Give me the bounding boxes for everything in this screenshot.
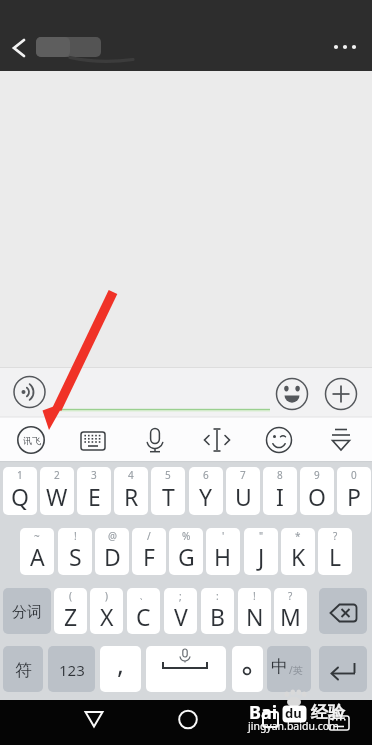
button[interactable]: ' — [206, 528, 240, 575]
button[interactable]: ? — [318, 528, 352, 575]
button[interactable]: ) — [90, 588, 123, 634]
staticText: 0 — [351, 468, 357, 482]
staticText: 3 — [91, 468, 97, 482]
button[interactable] — [146, 646, 226, 692]
button[interactable]: @ — [95, 528, 129, 575]
button[interactable] — [232, 646, 263, 692]
staticText: 中 — [271, 656, 288, 677]
staticText: % — [182, 529, 191, 543]
button[interactable]: 9 — [300, 467, 334, 515]
button[interactable] — [6, 32, 38, 64]
button[interactable]: ~ — [20, 528, 54, 575]
staticText: ) — [105, 589, 108, 603]
button[interactable]: ! — [238, 588, 271, 634]
button[interactable] — [319, 588, 367, 634]
staticText: 9 — [314, 468, 320, 482]
button[interactable] — [325, 378, 357, 410]
staticText: O — [308, 481, 326, 512]
button[interactable] — [323, 422, 359, 458]
staticText: /英 — [289, 663, 303, 677]
button[interactable]: ; — [164, 588, 197, 634]
staticText: du — [285, 704, 302, 722]
staticText: ( — [69, 589, 72, 603]
button[interactable]: 8 — [263, 467, 297, 515]
button[interactable] — [261, 422, 297, 458]
staticText: : — [216, 589, 219, 603]
staticText: W — [46, 481, 68, 512]
staticText: 符 — [15, 660, 32, 681]
staticText: D — [104, 541, 121, 572]
button[interactable] — [319, 646, 367, 692]
staticText: ~ — [34, 529, 40, 543]
staticText: Z — [64, 601, 78, 632]
staticText: B — [210, 601, 225, 632]
button[interactable] — [14, 376, 46, 408]
staticText: 5 — [165, 468, 171, 482]
staticText: M — [280, 601, 301, 632]
staticText: I — [276, 481, 284, 512]
button[interactable] — [137, 422, 173, 458]
button[interactable] — [78, 706, 110, 738]
button[interactable]: 6 — [189, 467, 223, 515]
button[interactable] — [199, 422, 235, 458]
staticText: E — [88, 481, 101, 512]
staticText: Y — [199, 481, 213, 512]
staticText: " — [259, 529, 264, 543]
button[interactable]: ? — [274, 588, 307, 634]
button[interactable]: ( — [54, 588, 87, 634]
staticText: H — [214, 541, 232, 572]
button[interactable]: 分词 — [3, 588, 51, 634]
button[interactable]: 符 — [3, 646, 43, 692]
staticText: ? — [333, 529, 338, 543]
button[interactable] — [172, 706, 204, 738]
button[interactable]: * — [281, 528, 315, 575]
staticText: 6 — [203, 468, 209, 482]
staticText: ? — [288, 589, 293, 603]
button[interactable]: 3 — [77, 467, 111, 515]
staticText: ' — [222, 529, 225, 543]
button[interactable]: 0 — [337, 467, 371, 515]
button[interactable]: % — [169, 528, 203, 575]
button[interactable] — [328, 32, 364, 64]
staticText: 讯飞 — [23, 435, 41, 446]
staticText: F — [143, 541, 155, 572]
button[interactable] — [75, 422, 111, 458]
staticText: ! — [253, 589, 256, 603]
button[interactable]: ! — [58, 528, 92, 575]
staticText: 分词 — [12, 603, 42, 622]
staticText: 2 — [54, 468, 60, 482]
staticText: 123 — [59, 660, 85, 680]
button[interactable]: 123 — [48, 646, 95, 692]
button[interactable]: 、 — [127, 588, 160, 634]
button[interactable] — [13, 422, 49, 458]
button[interactable] — [276, 378, 308, 410]
button[interactable]: : — [201, 588, 234, 634]
staticText: U — [235, 481, 252, 512]
staticText: ; — [179, 589, 182, 603]
button[interactable]: 1 — [3, 467, 37, 515]
staticText: Q — [11, 481, 29, 512]
button[interactable]: 4 — [114, 467, 148, 515]
staticText: 、 — [139, 589, 149, 602]
staticText: 1 — [17, 468, 23, 482]
button[interactable] — [254, 706, 286, 738]
staticText: 4 — [128, 468, 134, 482]
staticText: * — [295, 529, 301, 543]
staticText: A — [30, 541, 45, 572]
button[interactable]: 7 — [226, 467, 260, 515]
staticText: @ — [108, 529, 117, 543]
button[interactable] — [267, 646, 311, 692]
button[interactable]: , — [100, 646, 141, 692]
button[interactable]: " — [244, 528, 278, 575]
staticText: C — [136, 601, 151, 632]
button[interactable]: 5 — [151, 467, 185, 515]
staticText: L — [329, 541, 342, 572]
staticText: 经验 — [311, 702, 345, 723]
button[interactable]: / — [132, 528, 166, 575]
staticText: K — [291, 541, 306, 572]
staticText: X — [100, 601, 114, 632]
staticText: , — [117, 646, 124, 681]
button[interactable]: 2 — [40, 467, 74, 515]
staticText: S — [69, 541, 82, 572]
staticText: 7 — [240, 468, 246, 482]
